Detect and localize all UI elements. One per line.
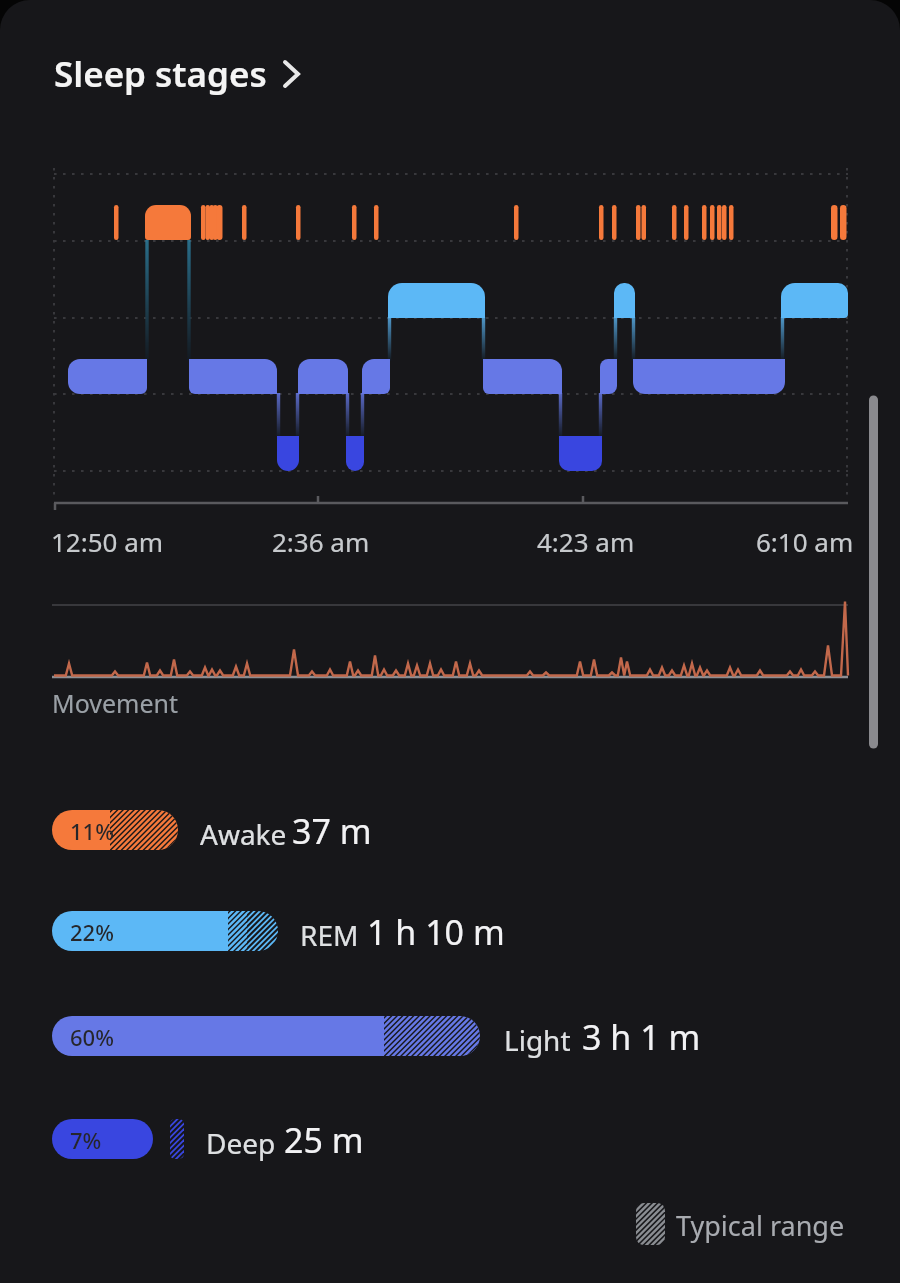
staticText: Typical range [676, 1207, 845, 1244]
staticText: 2:36 am [272, 524, 370, 559]
staticText: 22% [70, 917, 114, 947]
staticText: 7% [70, 1125, 102, 1155]
staticText: 6:10 am [756, 524, 854, 559]
staticText: 4:23 am [537, 524, 635, 559]
staticText: Movement [52, 686, 179, 720]
staticText: REM [300, 916, 359, 954]
staticText: Deep [206, 1124, 276, 1162]
staticText: Awake [200, 815, 287, 853]
staticText: Light [504, 1021, 571, 1059]
button[interactable]: Sleep stages [54, 50, 300, 98]
staticText: 1 h 10 m [367, 909, 505, 955]
staticText: 11% [70, 816, 114, 846]
staticText: 37 m [292, 808, 372, 854]
staticText: Sleep stages [54, 50, 267, 98]
staticText: 3 h 1 m [582, 1014, 701, 1060]
staticText: 60% [70, 1022, 114, 1052]
staticText: 12:50 am [51, 524, 164, 559]
staticText: 25 m [284, 1117, 364, 1163]
